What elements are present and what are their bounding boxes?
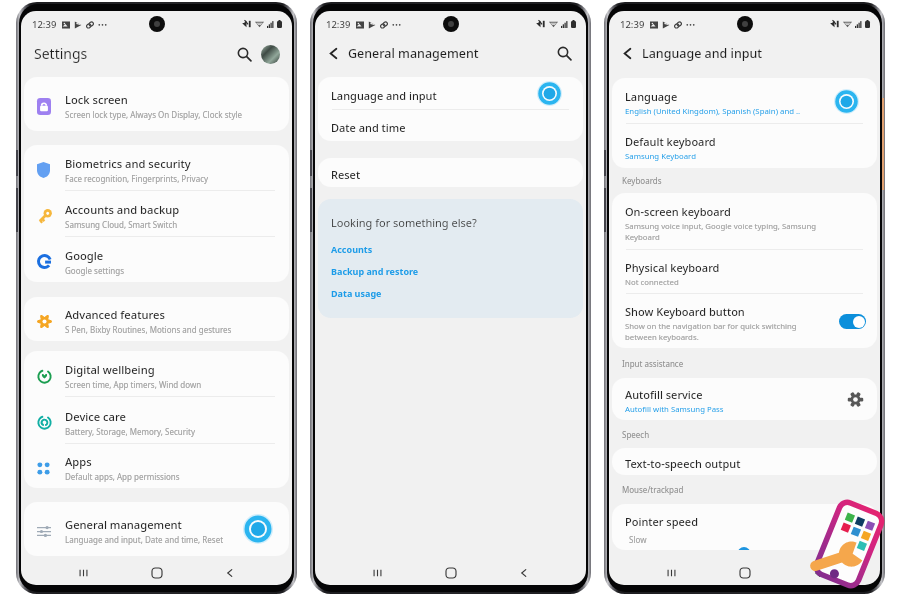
staticText: Language bbox=[625, 89, 678, 104]
staticText: General management bbox=[65, 517, 182, 532]
staticText: Screen time, App timers, Wind down bbox=[65, 379, 202, 390]
button[interactable]: Accounts and backup bbox=[24, 191, 289, 237]
staticText: Looking for something else? bbox=[331, 215, 477, 230]
button[interactable]: Language bbox=[612, 78, 877, 124]
staticText: 12:39 bbox=[32, 18, 57, 31]
button[interactable]: Accounts bbox=[331, 243, 373, 255]
button[interactable]: Profile bbox=[261, 45, 280, 64]
staticText: Google bbox=[65, 248, 104, 263]
button[interactable]: Navigate up bbox=[324, 44, 343, 63]
staticText: Autofill with Samsung Pass bbox=[625, 404, 724, 415]
button[interactable]: Physical keyboard bbox=[612, 250, 877, 294]
staticText: Accounts and backup bbox=[65, 202, 180, 217]
staticText: Pointer speed bbox=[625, 514, 698, 529]
button[interactable]: Home bbox=[733, 561, 757, 585]
staticText: On-screen keyboard bbox=[625, 204, 731, 219]
button[interactable]: Autofill service bbox=[612, 378, 877, 420]
staticText: Biometrics and security bbox=[65, 156, 191, 171]
staticText: Samsung Cloud, Smart Switch bbox=[65, 219, 178, 230]
button[interactable]: Reset bbox=[318, 158, 583, 187]
button[interactable]: Home bbox=[145, 561, 169, 585]
button[interactable]: Home bbox=[439, 561, 463, 585]
staticText: Keyboards bbox=[622, 175, 662, 186]
staticText: Device care bbox=[65, 409, 126, 424]
button[interactable]: Back bbox=[218, 561, 242, 585]
button[interactable]: Recents bbox=[365, 561, 389, 585]
staticText: 12:39 bbox=[620, 18, 645, 31]
button[interactable]: Back bbox=[512, 561, 536, 585]
staticText: Autofill service bbox=[625, 387, 703, 402]
button[interactable]: Data usage bbox=[331, 287, 382, 299]
button[interactable]: Default keyboard bbox=[612, 124, 877, 168]
staticText: Input assistance bbox=[622, 358, 684, 369]
button[interactable]: On-screen keyboard bbox=[612, 193, 877, 250]
button[interactable]: Text-to-speech output bbox=[612, 448, 877, 475]
button[interactable]: Back bbox=[806, 561, 830, 585]
staticText: Default keyboard bbox=[625, 134, 716, 149]
staticText: Battery, Storage, Memory, Security bbox=[65, 426, 196, 437]
button[interactable]: Backup and restore bbox=[331, 265, 419, 277]
staticText: Samsung voice input, Google voice typing… bbox=[625, 221, 835, 243]
staticText: Default apps, App permissions bbox=[65, 471, 180, 482]
button[interactable]: Advanced features bbox=[24, 297, 289, 341]
staticText: Language and input bbox=[642, 45, 763, 62]
staticText: Show on the navigation bar for quick swi… bbox=[625, 321, 829, 343]
button[interactable]: Biometrics and security bbox=[24, 145, 289, 191]
staticText: Google settings bbox=[65, 265, 124, 276]
staticText: Not connected bbox=[625, 277, 679, 288]
staticText: Language and input, Date and time, Reset bbox=[65, 534, 224, 545]
staticText: Physical keyboard bbox=[625, 260, 720, 275]
button[interactable]: Show Keyboard button bbox=[612, 294, 877, 348]
button[interactable]: Apps bbox=[24, 444, 289, 488]
button[interactable]: General management bbox=[24, 502, 289, 556]
staticText: Advanced features bbox=[65, 307, 165, 322]
staticText: Reset bbox=[331, 167, 361, 182]
staticText: Samsung Keyboard bbox=[625, 151, 696, 162]
button[interactable]: Recents bbox=[659, 561, 683, 585]
staticText: S Pen, Bixby Routines, Motions and gestu… bbox=[65, 324, 232, 335]
button[interactable]: Digital wellbeing bbox=[24, 351, 289, 397]
staticText: Mouse/trackpad bbox=[622, 484, 684, 495]
staticText: 12:39 bbox=[326, 18, 351, 31]
staticText: Language and input bbox=[331, 88, 437, 103]
staticText: Text-to-speech output bbox=[625, 456, 741, 471]
button[interactable]: Recents bbox=[71, 561, 95, 585]
staticText: Speech bbox=[622, 429, 650, 440]
button[interactable]: Autofill settings bbox=[846, 390, 864, 408]
staticText: Screen lock type, Always On Display, Clo… bbox=[65, 109, 243, 120]
staticText: Lock screen bbox=[65, 92, 128, 107]
button[interactable]: Show keyboard button toggle bbox=[839, 314, 866, 329]
staticText: Slow bbox=[629, 534, 647, 545]
button[interactable]: Navigate up bbox=[618, 44, 637, 63]
button[interactable]: Lock screen bbox=[24, 77, 289, 131]
button[interactable]: Device care bbox=[24, 397, 289, 444]
staticText: English (United Kingdom), Spanish (Spain… bbox=[625, 106, 801, 117]
button[interactable]: Search bbox=[234, 44, 254, 64]
button[interactable]: Language and input bbox=[318, 77, 583, 110]
button[interactable]: Search bbox=[555, 44, 574, 63]
staticText: Fast bbox=[845, 534, 861, 545]
staticText: General management bbox=[348, 45, 479, 62]
staticText: Face recognition, Fingerprints, Privacy bbox=[65, 173, 209, 184]
staticText: Apps bbox=[65, 454, 92, 469]
button[interactable]: Date and time bbox=[318, 110, 583, 141]
staticText: Date and time bbox=[331, 120, 406, 135]
button[interactable]: Google bbox=[24, 237, 289, 282]
staticText: Settings bbox=[34, 44, 88, 63]
staticText: Digital wellbeing bbox=[65, 362, 155, 377]
staticText: Show Keyboard button bbox=[625, 304, 745, 319]
